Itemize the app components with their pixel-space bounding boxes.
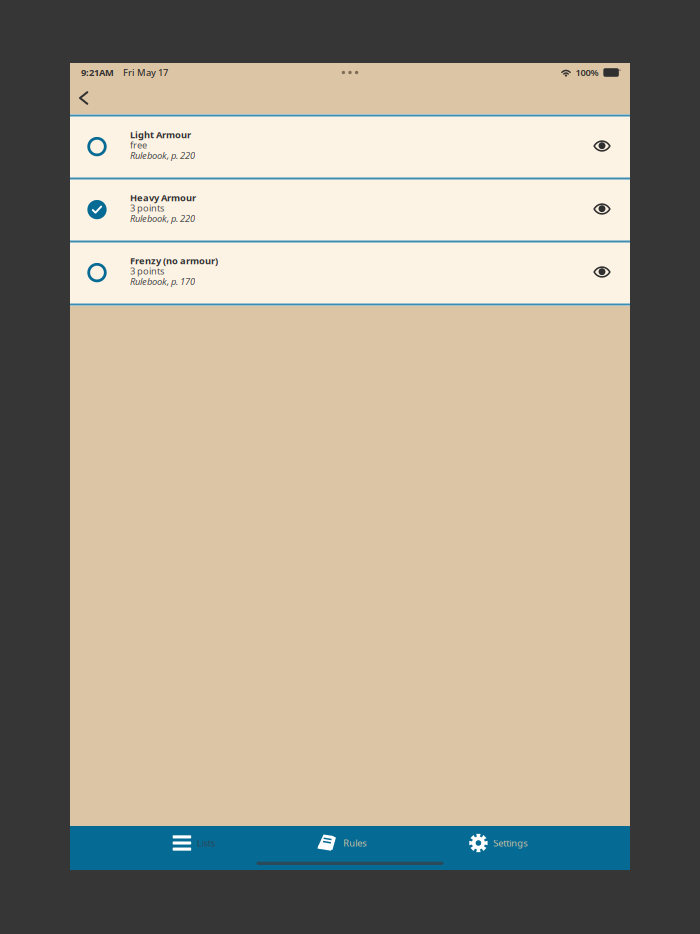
button[interactable]: Rules (317, 830, 366, 856)
staticText: 100% (575, 66, 598, 79)
staticText: 9:21 (81, 66, 99, 79)
button[interactable]: Light Armour (75, 119, 580, 175)
staticText: 3 points (130, 202, 164, 214)
button[interactable]: Show rules for Light Armour (580, 119, 624, 175)
staticText: Rules (343, 837, 366, 849)
button[interactable]: Show rules for Heavy Armour (580, 182, 624, 238)
button[interactable]: Frenzy (no armour) (75, 245, 580, 301)
staticText: Rulebook, p. 220 (130, 149, 195, 162)
button[interactable]: Back (70, 82, 104, 114)
staticText: free (130, 139, 147, 151)
staticText: Light Armour (130, 128, 191, 141)
staticText: Heavy Armour (130, 191, 196, 204)
staticText: Settings (493, 837, 527, 849)
button[interactable]: Show rules for Frenzy (no armour) (580, 245, 624, 301)
staticText: Fri May 17 (123, 66, 168, 79)
staticText: AM (99, 66, 114, 79)
staticText: Frenzy (no armour) (130, 254, 218, 267)
staticText: Rulebook, p. 220 (130, 212, 195, 225)
button[interactable]: Settings (469, 830, 527, 856)
staticText: Rulebook, p. 170 (130, 275, 195, 288)
staticText: Lists (197, 837, 215, 849)
button[interactable]: Lists (173, 830, 215, 856)
staticText: 3 points (130, 265, 164, 277)
button[interactable]: Heavy Armour (75, 182, 580, 238)
